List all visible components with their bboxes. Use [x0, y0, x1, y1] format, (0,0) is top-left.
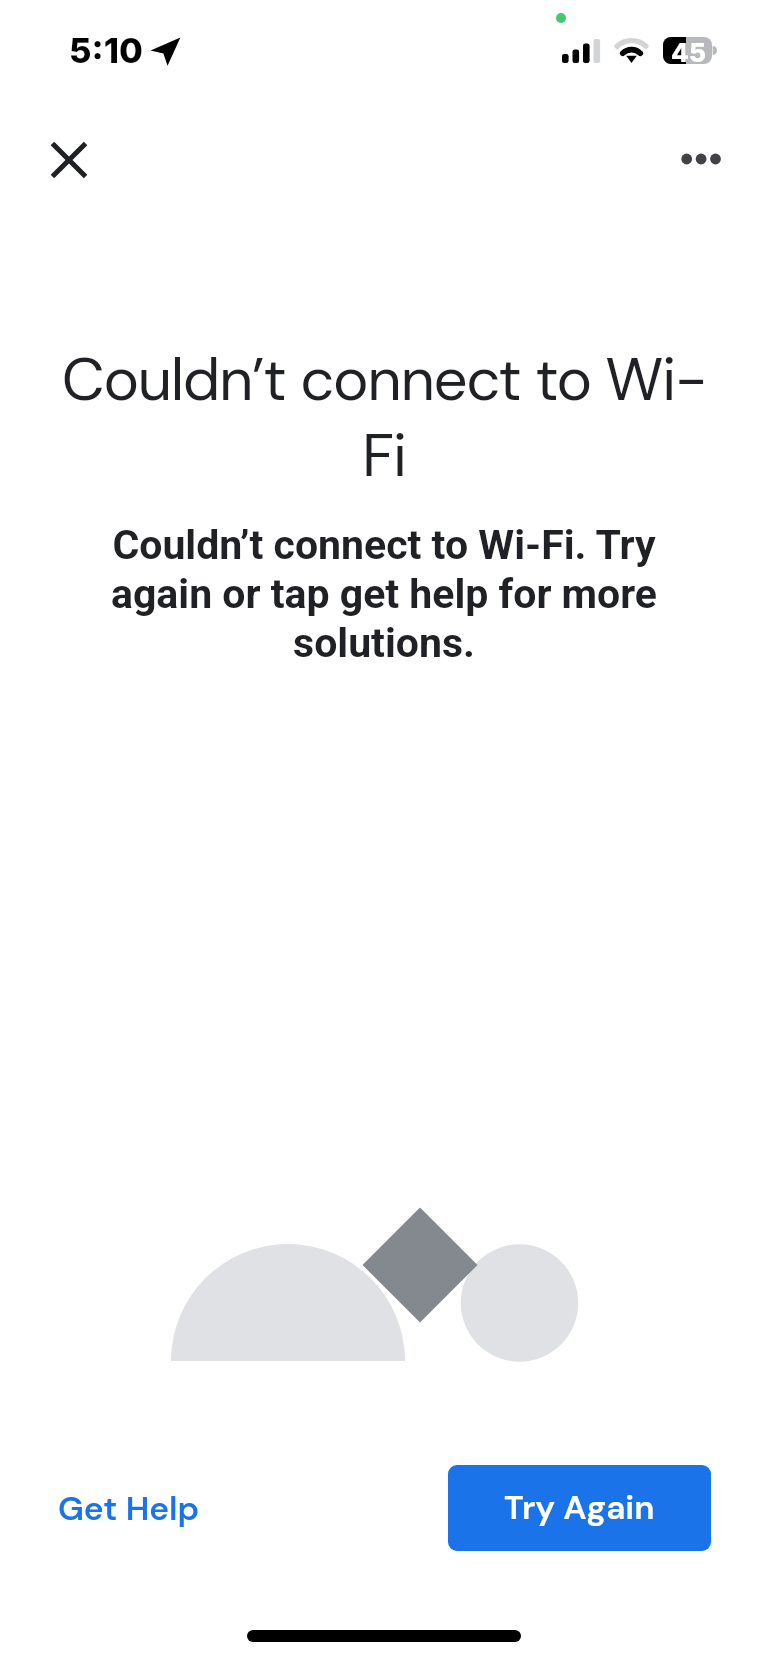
button[interactable]: Get Help [58, 1487, 200, 1531]
staticText: Couldn’t connect to Wi-Fi. Try again or … [0, 521, 768, 667]
button[interactable]: Try Again [448, 1465, 711, 1551]
staticText: Try Again [504, 1486, 655, 1530]
button[interactable]: Close [30, 121, 108, 199]
staticText: Couldn’t connect to Wi- Fi [0, 340, 768, 495]
staticText: Get Help [58, 1487, 200, 1531]
staticText: 5:10 [69, 30, 143, 72]
staticText: 45 [671, 37, 706, 64]
button[interactable]: More options [662, 120, 740, 198]
